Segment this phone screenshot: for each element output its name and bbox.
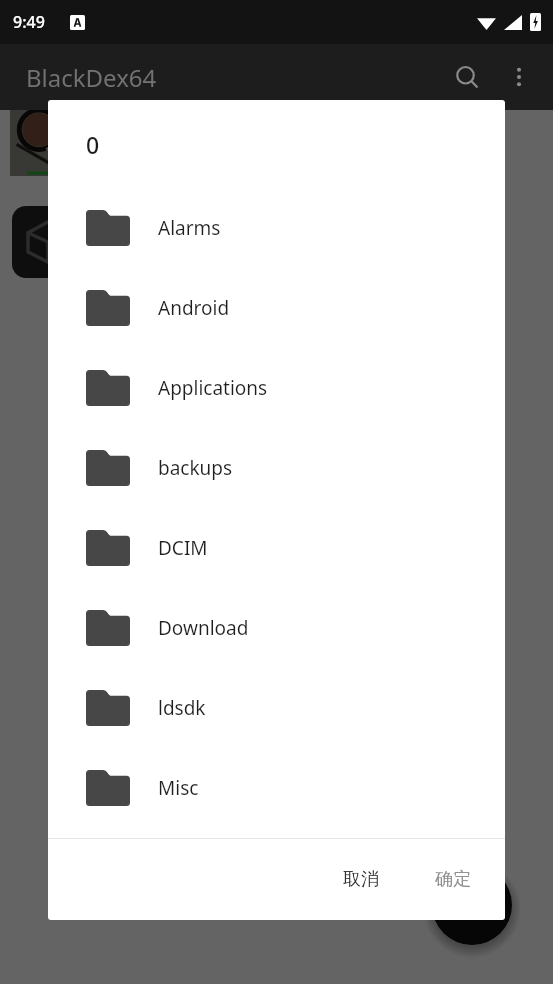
button[interactable]: More options [493, 51, 545, 103]
staticText: 0 [86, 129, 100, 160]
staticText: Misc [158, 775, 199, 801]
staticText: 确定 [435, 868, 471, 891]
staticText: 9:49 [13, 11, 45, 33]
button[interactable]: Applications [48, 348, 505, 428]
button[interactable]: backups [48, 428, 505, 508]
button[interactable]: 确定 [419, 858, 487, 901]
staticText: 取消 [343, 868, 379, 891]
staticText: Alarms [158, 215, 221, 241]
button[interactable]: Download [48, 588, 505, 668]
staticText: ldsdk [158, 695, 206, 721]
staticText: BlackDex64 [26, 61, 157, 94]
staticText: backups [158, 455, 233, 481]
button[interactable]: Misc [48, 748, 505, 828]
staticText: Android [158, 295, 230, 321]
button[interactable]: Search [441, 51, 493, 103]
button[interactable]: 取消 [327, 858, 395, 901]
staticText: Applications [158, 375, 268, 401]
button[interactable]: Alarms [48, 188, 505, 268]
button[interactable]: Android [48, 268, 505, 348]
staticText: DCIM [158, 535, 208, 561]
staticText: Download [158, 615, 249, 641]
button[interactable]: ldsdk [48, 668, 505, 748]
button[interactable]: DCIM [48, 508, 505, 588]
